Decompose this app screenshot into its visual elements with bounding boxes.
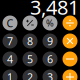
button[interactable]: 4: [2, 51, 17, 66]
button[interactable]: Divide: [62, 15, 77, 30]
staticText: %: [46, 17, 54, 29]
staticText: 2: [27, 70, 33, 80]
button[interactable]: 8: [22, 33, 37, 48]
staticText: 8: [27, 34, 33, 48]
staticText: 3: [47, 70, 53, 80]
button[interactable]: 7: [2, 33, 17, 48]
button[interactable]: 9: [42, 33, 57, 48]
staticText: 1: [7, 70, 13, 80]
staticText: C: [6, 16, 13, 30]
button[interactable]: 3: [42, 69, 57, 80]
staticText: 3,481: [30, 0, 79, 20]
staticText: 5: [27, 52, 33, 66]
button[interactable]: 2: [22, 69, 37, 80]
button[interactable]: Multiply: [62, 33, 77, 48]
button[interactable]: Change sign: [22, 15, 37, 30]
button[interactable]: Subtract: [62, 51, 77, 66]
button[interactable]: 5: [22, 51, 37, 66]
button[interactable]: 1: [2, 69, 17, 80]
staticText: 6: [47, 52, 53, 66]
button[interactable]: Add: [62, 69, 77, 80]
button[interactable]: C: [2, 15, 17, 30]
button[interactable]: %: [42, 15, 57, 30]
staticText: 9: [47, 34, 53, 48]
staticText: 7: [7, 34, 13, 48]
button[interactable]: 6: [42, 51, 57, 66]
staticText: 4: [7, 52, 13, 66]
